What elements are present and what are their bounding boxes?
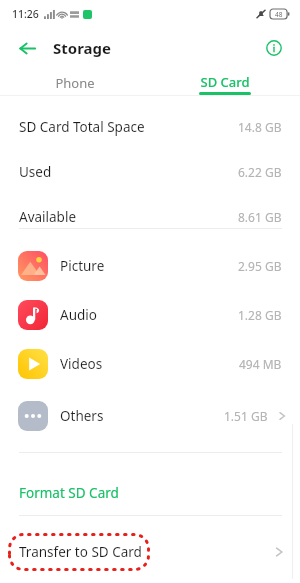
button[interactable]: Audio [0,297,300,332]
staticText: Phone [55,74,95,92]
staticText: Audio [60,306,97,324]
staticText: Videos [60,355,103,373]
button[interactable]: Videos [0,346,300,381]
staticText: 494 MB [239,356,282,372]
button[interactable]: Transfer to SD Card [0,528,300,576]
staticText: Transfer to SD Card [19,543,142,561]
staticText: Picture [60,257,105,275]
button[interactable]: Format SD Card [0,470,300,515]
staticText: Format SD Card [19,484,119,502]
staticText: 1.28 GB [238,307,282,323]
button[interactable]: Used [0,149,300,194]
staticText: 11:26 [12,7,39,21]
button[interactable]: SD Card Total Space [0,104,300,149]
staticText: 1.51 GB [224,408,268,424]
button[interactable]: Available [0,194,300,239]
staticText: SD Card Total Space [19,118,145,136]
staticText: 8.61 GB [238,209,282,225]
staticText: SD Card [200,73,250,91]
button[interactable]: SD Card [150,68,300,98]
staticText: Storage [53,38,111,58]
button[interactable]: Info [259,33,289,63]
button[interactable]: Others [0,398,300,433]
staticText: 6.22 GB [238,164,282,180]
button[interactable]: Back [12,33,42,63]
staticText: 14.8 GB [238,119,282,135]
staticText: Used [19,163,52,181]
button[interactable]: Phone [0,68,150,98]
staticText: Available [19,208,76,226]
button[interactable]: Picture [0,248,300,283]
staticText: Others [60,407,104,425]
staticText: 2.95 GB [238,258,282,274]
staticText: 48 [275,10,283,19]
